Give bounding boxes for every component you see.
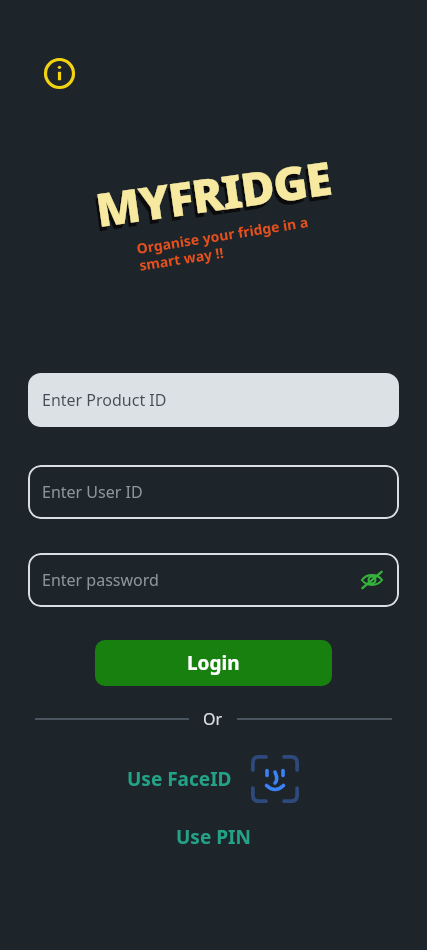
button[interactable]: Enter User ID bbox=[28, 465, 399, 519]
button[interactable]: Login bbox=[95, 640, 332, 686]
button[interactable]: Enter Product ID bbox=[28, 373, 399, 427]
staticText: Enter password bbox=[42, 569, 159, 591]
staticText: Enter Product ID bbox=[42, 389, 167, 411]
button[interactable]: Toggle password visibility bbox=[357, 565, 387, 595]
staticText: MYFRIDGE bbox=[89, 150, 333, 246]
staticText: Or bbox=[203, 708, 223, 730]
staticText: Organise your fridge in a smart way !! bbox=[135, 212, 313, 275]
button[interactable]: Enter password bbox=[28, 553, 399, 607]
button[interactable]: Use FaceID bbox=[127, 754, 300, 804]
button[interactable]: Use PIN bbox=[170, 818, 257, 856]
staticText: Use FaceID bbox=[127, 766, 232, 792]
staticText: MYFRIDGE bbox=[92, 146, 335, 241]
staticText: Use PIN bbox=[176, 824, 251, 850]
button[interactable]: Information bbox=[44, 58, 75, 89]
staticText: Login bbox=[187, 650, 240, 676]
staticText: Enter User ID bbox=[42, 481, 143, 503]
